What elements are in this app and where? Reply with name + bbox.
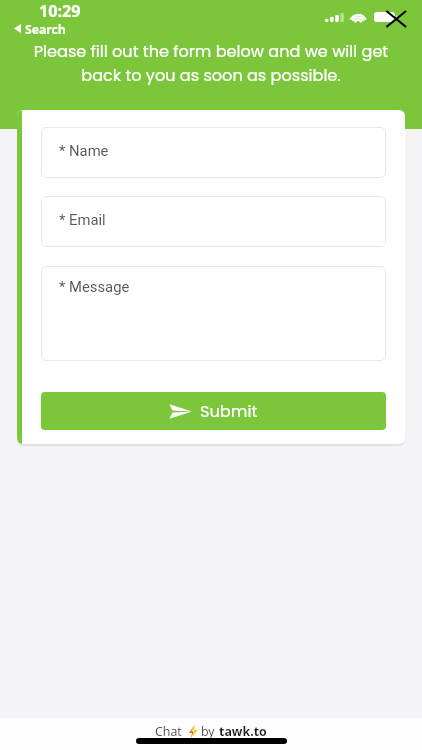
staticText: * Name xyxy=(59,142,109,159)
staticText: * Email xyxy=(59,211,106,228)
button[interactable]: Chat xyxy=(0,718,422,750)
staticText: Submit xyxy=(200,400,258,423)
staticText: Chat xyxy=(155,723,182,740)
staticText: tawk.to xyxy=(219,723,267,740)
button[interactable]: * Message xyxy=(41,266,386,361)
staticText: Please fill out the form below and we wi… xyxy=(16,40,406,86)
staticText: 10:29 xyxy=(39,0,81,22)
button[interactable]: Close xyxy=(384,9,408,29)
button[interactable]: * Name xyxy=(41,127,386,178)
button[interactable]: Submit xyxy=(41,392,386,430)
button[interactable]: * Email xyxy=(41,196,386,247)
staticText: Search xyxy=(25,21,66,35)
staticText: * Message xyxy=(59,278,130,295)
staticText: by xyxy=(201,723,215,740)
